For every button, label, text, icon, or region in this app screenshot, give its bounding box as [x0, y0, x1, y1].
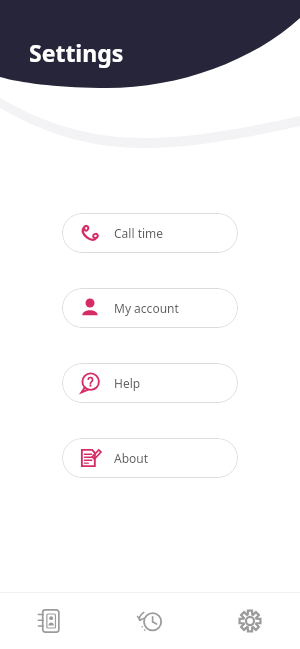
staticText: Call time	[114, 225, 164, 241]
button[interactable]: Settings	[200, 593, 300, 649]
button[interactable]: Contacts	[0, 593, 100, 649]
button[interactable]: Call time	[62, 213, 238, 253]
button[interactable]: About	[62, 438, 238, 478]
button[interactable]: Help	[62, 363, 238, 403]
staticText: About	[114, 450, 149, 466]
button[interactable]: My account	[62, 288, 238, 328]
staticText: Help	[114, 375, 141, 391]
staticText: Settings	[29, 37, 124, 68]
staticText: My account	[114, 300, 179, 316]
button[interactable]: History	[100, 593, 200, 649]
